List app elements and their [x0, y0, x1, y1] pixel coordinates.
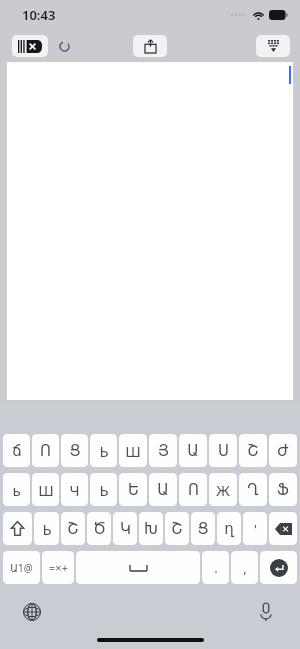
- staticText: Ж: [216, 480, 230, 500]
- staticText: Ա1@: [10, 561, 33, 575]
- button[interactable]: Ь: [90, 434, 117, 467]
- button[interactable]: ь: [3, 473, 30, 506]
- staticText: Ь: [99, 480, 109, 500]
- button[interactable]: Backspace: [269, 512, 297, 545]
- button[interactable]: =×+: [42, 551, 74, 584]
- staticText: Ա: [157, 481, 169, 498]
- staticText: Շ: [247, 442, 259, 459]
- button[interactable]: Clear: [12, 35, 48, 57]
- button[interactable]: Shift: [3, 512, 32, 545]
- button[interactable]: Space: [76, 551, 200, 584]
- button[interactable]: Ղ: [239, 473, 267, 506]
- button[interactable]: .: [202, 551, 229, 584]
- button[interactable]: Ա: [179, 434, 207, 467]
- button[interactable]: Ս: [209, 434, 237, 467]
- button[interactable]: Ո: [32, 434, 59, 467]
- staticText: =×+: [49, 560, 68, 575]
- button[interactable]: Շ: [165, 512, 189, 545]
- button[interactable]: Ь: [90, 473, 117, 506]
- button[interactable]: Ь: [34, 512, 59, 545]
- staticText: Յ: [158, 442, 169, 459]
- button[interactable]: Ш: [119, 434, 147, 467]
- staticText: Ь: [99, 441, 109, 461]
- button[interactable]: Ա1@: [3, 551, 40, 584]
- staticText: Ч: [69, 480, 80, 500]
- staticText: ճ: [12, 442, 22, 459]
- button[interactable]: Յ: [149, 434, 177, 467]
- staticText: Ա: [187, 442, 199, 459]
- button[interactable]: ղ: [217, 512, 241, 545]
- button[interactable]: Ֆ: [269, 473, 297, 506]
- staticText: Ժ: [277, 442, 289, 459]
- staticText: ': [254, 520, 257, 538]
- staticText: Ե: [128, 481, 139, 498]
- staticText: ь: [12, 480, 21, 500]
- staticText: 10:43: [22, 6, 56, 24]
- button[interactable]: Share: [133, 35, 167, 57]
- staticText: Շ: [171, 520, 183, 537]
- button[interactable]: Hide keyboard: [256, 35, 290, 57]
- button[interactable]: Շ: [239, 434, 267, 467]
- staticText: Շ: [67, 520, 79, 537]
- staticText: Ս: [218, 442, 229, 459]
- staticText: Ь: [42, 519, 52, 539]
- button[interactable]: Շ: [61, 512, 85, 545]
- button[interactable]: Ց: [61, 434, 88, 467]
- button[interactable]: Խ: [139, 512, 163, 545]
- button[interactable]: [7, 62, 293, 400]
- staticText: Ֆ: [277, 481, 289, 498]
- staticText: .: [214, 559, 218, 577]
- staticText: Ո: [188, 481, 199, 498]
- button[interactable]: Ժ: [269, 434, 297, 467]
- button[interactable]: Ո: [179, 473, 207, 506]
- button[interactable]: Ծ: [87, 512, 111, 545]
- button[interactable]: ճ: [3, 434, 30, 467]
- staticText: ղ: [224, 520, 234, 537]
- button[interactable]: Return: [260, 551, 297, 584]
- staticText: ,: [243, 559, 247, 577]
- staticText: Ղ: [247, 481, 259, 498]
- staticText: Ծ: [93, 520, 106, 537]
- button[interactable]: Dictation: [254, 600, 278, 624]
- button[interactable]: Ց: [191, 512, 215, 545]
- button[interactable]: ,: [231, 551, 258, 584]
- button[interactable]: Ե: [119, 473, 147, 506]
- staticText: Ш: [38, 480, 54, 500]
- staticText: Կ: [120, 520, 131, 537]
- button[interactable]: Կ: [113, 512, 137, 545]
- button[interactable]: Ш: [32, 473, 59, 506]
- button[interactable]: Ж: [209, 473, 237, 506]
- button[interactable]: Undo: [57, 39, 71, 53]
- button[interactable]: Ч: [61, 473, 88, 506]
- staticText: Ш: [125, 441, 141, 461]
- staticText: Ո: [40, 442, 51, 459]
- button[interactable]: Ա: [149, 473, 177, 506]
- staticText: Խ: [144, 520, 158, 537]
- button[interactable]: Change keyboard: [20, 600, 44, 624]
- staticText: Ց: [197, 520, 209, 537]
- button[interactable]: ': [243, 512, 267, 545]
- staticText: Ց: [69, 442, 81, 459]
